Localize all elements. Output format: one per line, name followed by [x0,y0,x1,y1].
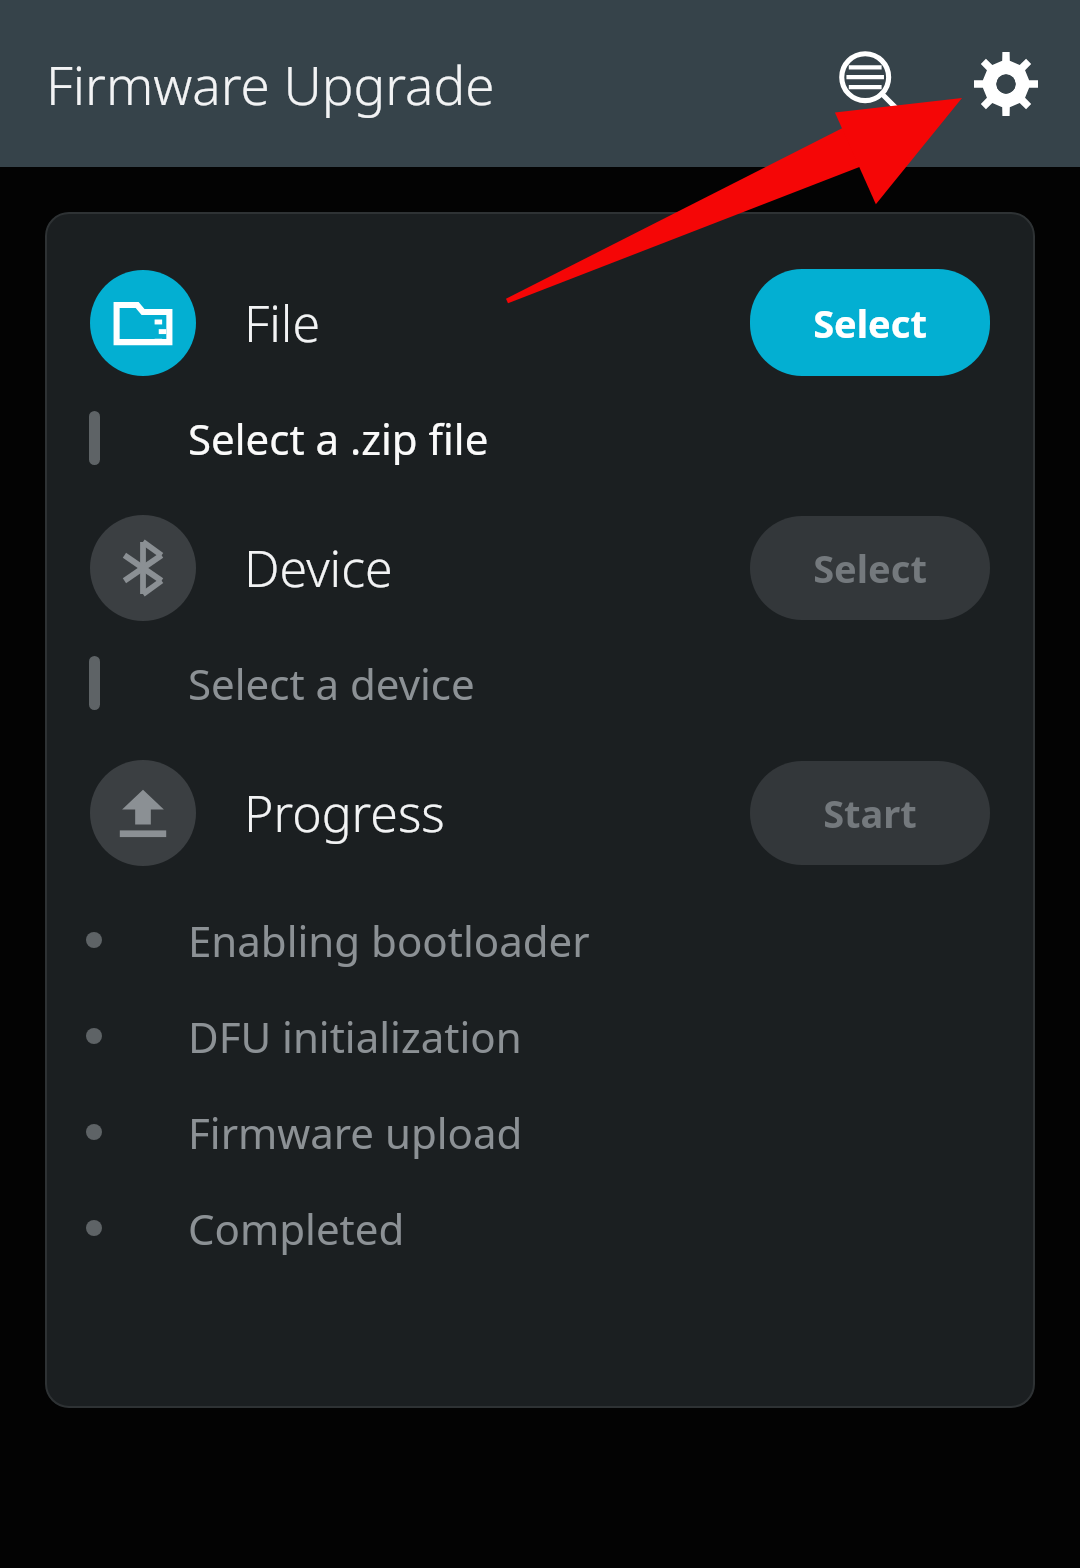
staticText: DFU initialization [188,1008,522,1065]
staticText: Select [813,542,927,594]
staticText: Firmware Upgrade [46,48,495,120]
staticText: Firmware upload [188,1104,523,1161]
staticText: File [244,289,321,357]
staticText: Device [244,534,393,602]
staticText: Progress [244,779,445,847]
button[interactable]: Select [750,269,990,376]
staticText: Select a device [188,655,475,712]
button[interactable]: Search log [824,36,920,132]
button[interactable]: Start [750,761,990,865]
staticText: Select [813,297,927,349]
staticText: Enabling bootloader [188,912,590,969]
staticText: Select a .zip file [188,410,489,467]
staticText: Start [823,787,917,839]
button[interactable]: Select [750,516,990,620]
button[interactable]: Settings [958,36,1054,132]
staticText: Completed [188,1200,405,1257]
